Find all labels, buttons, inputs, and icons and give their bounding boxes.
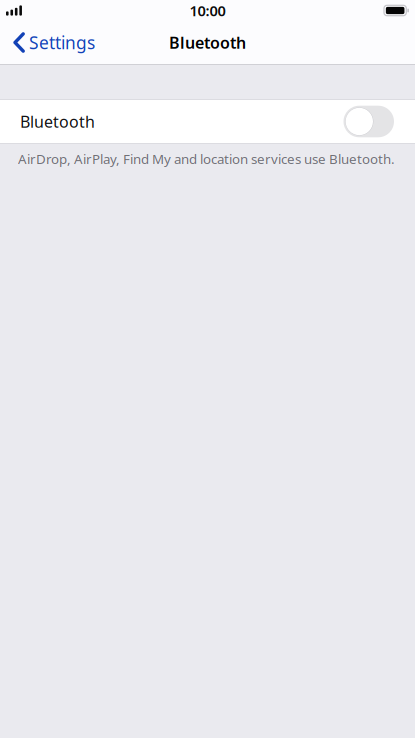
button[interactable]: Bluetooth — [343, 106, 394, 137]
staticText: Settings — [29, 31, 95, 54]
button[interactable]: Settings — [0, 21, 103, 64]
staticText: Bluetooth — [169, 32, 246, 53]
staticText: AirDrop, AirPlay, Find My and location s… — [18, 150, 395, 168]
staticText: Bluetooth — [20, 111, 95, 132]
staticText: 10:00 — [189, 1, 225, 20]
